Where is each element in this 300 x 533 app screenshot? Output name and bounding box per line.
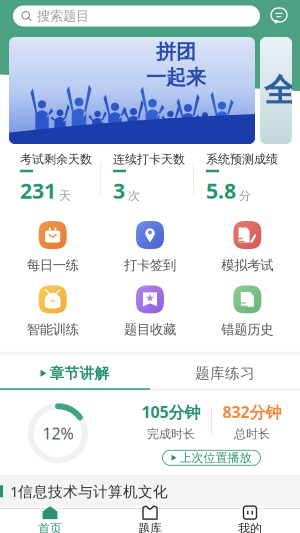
- staticText: 天: [59, 188, 71, 203]
- staticText: 3: [113, 176, 125, 204]
- button[interactable]: 1信息技术与计算机文化: [0, 476, 300, 506]
- staticText: 1信息技术与计算机文化: [10, 481, 168, 501]
- button[interactable]: 我的: [200, 506, 300, 533]
- staticText: 拼团: [156, 39, 196, 64]
- staticText: 模拟考试: [221, 257, 273, 273]
- staticText: 章节讲解: [49, 364, 109, 382]
- button[interactable]: 搜索题目: [13, 5, 260, 26]
- staticText: 分: [239, 188, 251, 203]
- staticText: 每日一练: [27, 257, 79, 273]
- button[interactable]: 错题历史: [199, 285, 296, 338]
- staticText: 上次位置播放: [179, 450, 251, 465]
- staticText: 832分钟: [222, 401, 281, 422]
- staticText: 我的: [238, 521, 262, 533]
- staticText: 题库: [138, 521, 162, 533]
- staticText: 题目收藏: [124, 321, 176, 338]
- button[interactable]: 每日一练: [4, 221, 101, 273]
- button[interactable]: 模拟考试: [199, 221, 296, 273]
- staticText: 打卡签到: [124, 257, 176, 273]
- staticText: 智能训练: [27, 321, 79, 338]
- staticText: 总时长: [234, 426, 270, 441]
- button[interactable]: 打卡签到: [101, 221, 199, 273]
- staticText: 考试剩余天数: [20, 152, 92, 167]
- staticText: 231: [20, 176, 56, 204]
- staticText: 系统预测成绩: [206, 152, 278, 167]
- button[interactable]: 题库: [100, 506, 200, 533]
- staticText: 题库练习: [195, 364, 255, 382]
- staticText: 12%: [42, 423, 73, 444]
- staticText: 次: [128, 188, 140, 203]
- staticText: 一起来: [146, 65, 206, 90]
- staticText: 5.8: [206, 176, 236, 204]
- staticText: 连续打卡天数: [113, 152, 185, 167]
- button[interactable]: 活动横幅: [9, 37, 255, 144]
- button[interactable]: 下一个横幅: [260, 37, 292, 144]
- staticText: 错题历史: [221, 321, 273, 338]
- button[interactable]: 首页: [0, 506, 100, 533]
- button[interactable]: 消息: [266, 5, 292, 27]
- staticText: 搜索题目: [37, 8, 89, 24]
- staticText: 完成时长: [147, 426, 195, 441]
- button[interactable]: 章节讲解: [0, 364, 150, 390]
- button[interactable]: 题目收藏: [101, 285, 199, 338]
- button[interactable]: 题库练习: [150, 364, 300, 390]
- button[interactable]: 上次位置播放: [162, 450, 260, 465]
- staticText: 105分钟: [141, 401, 200, 422]
- button[interactable]: 智能训练: [4, 285, 101, 338]
- staticText: 首页: [38, 521, 62, 533]
- staticText: 全: [264, 71, 296, 110]
